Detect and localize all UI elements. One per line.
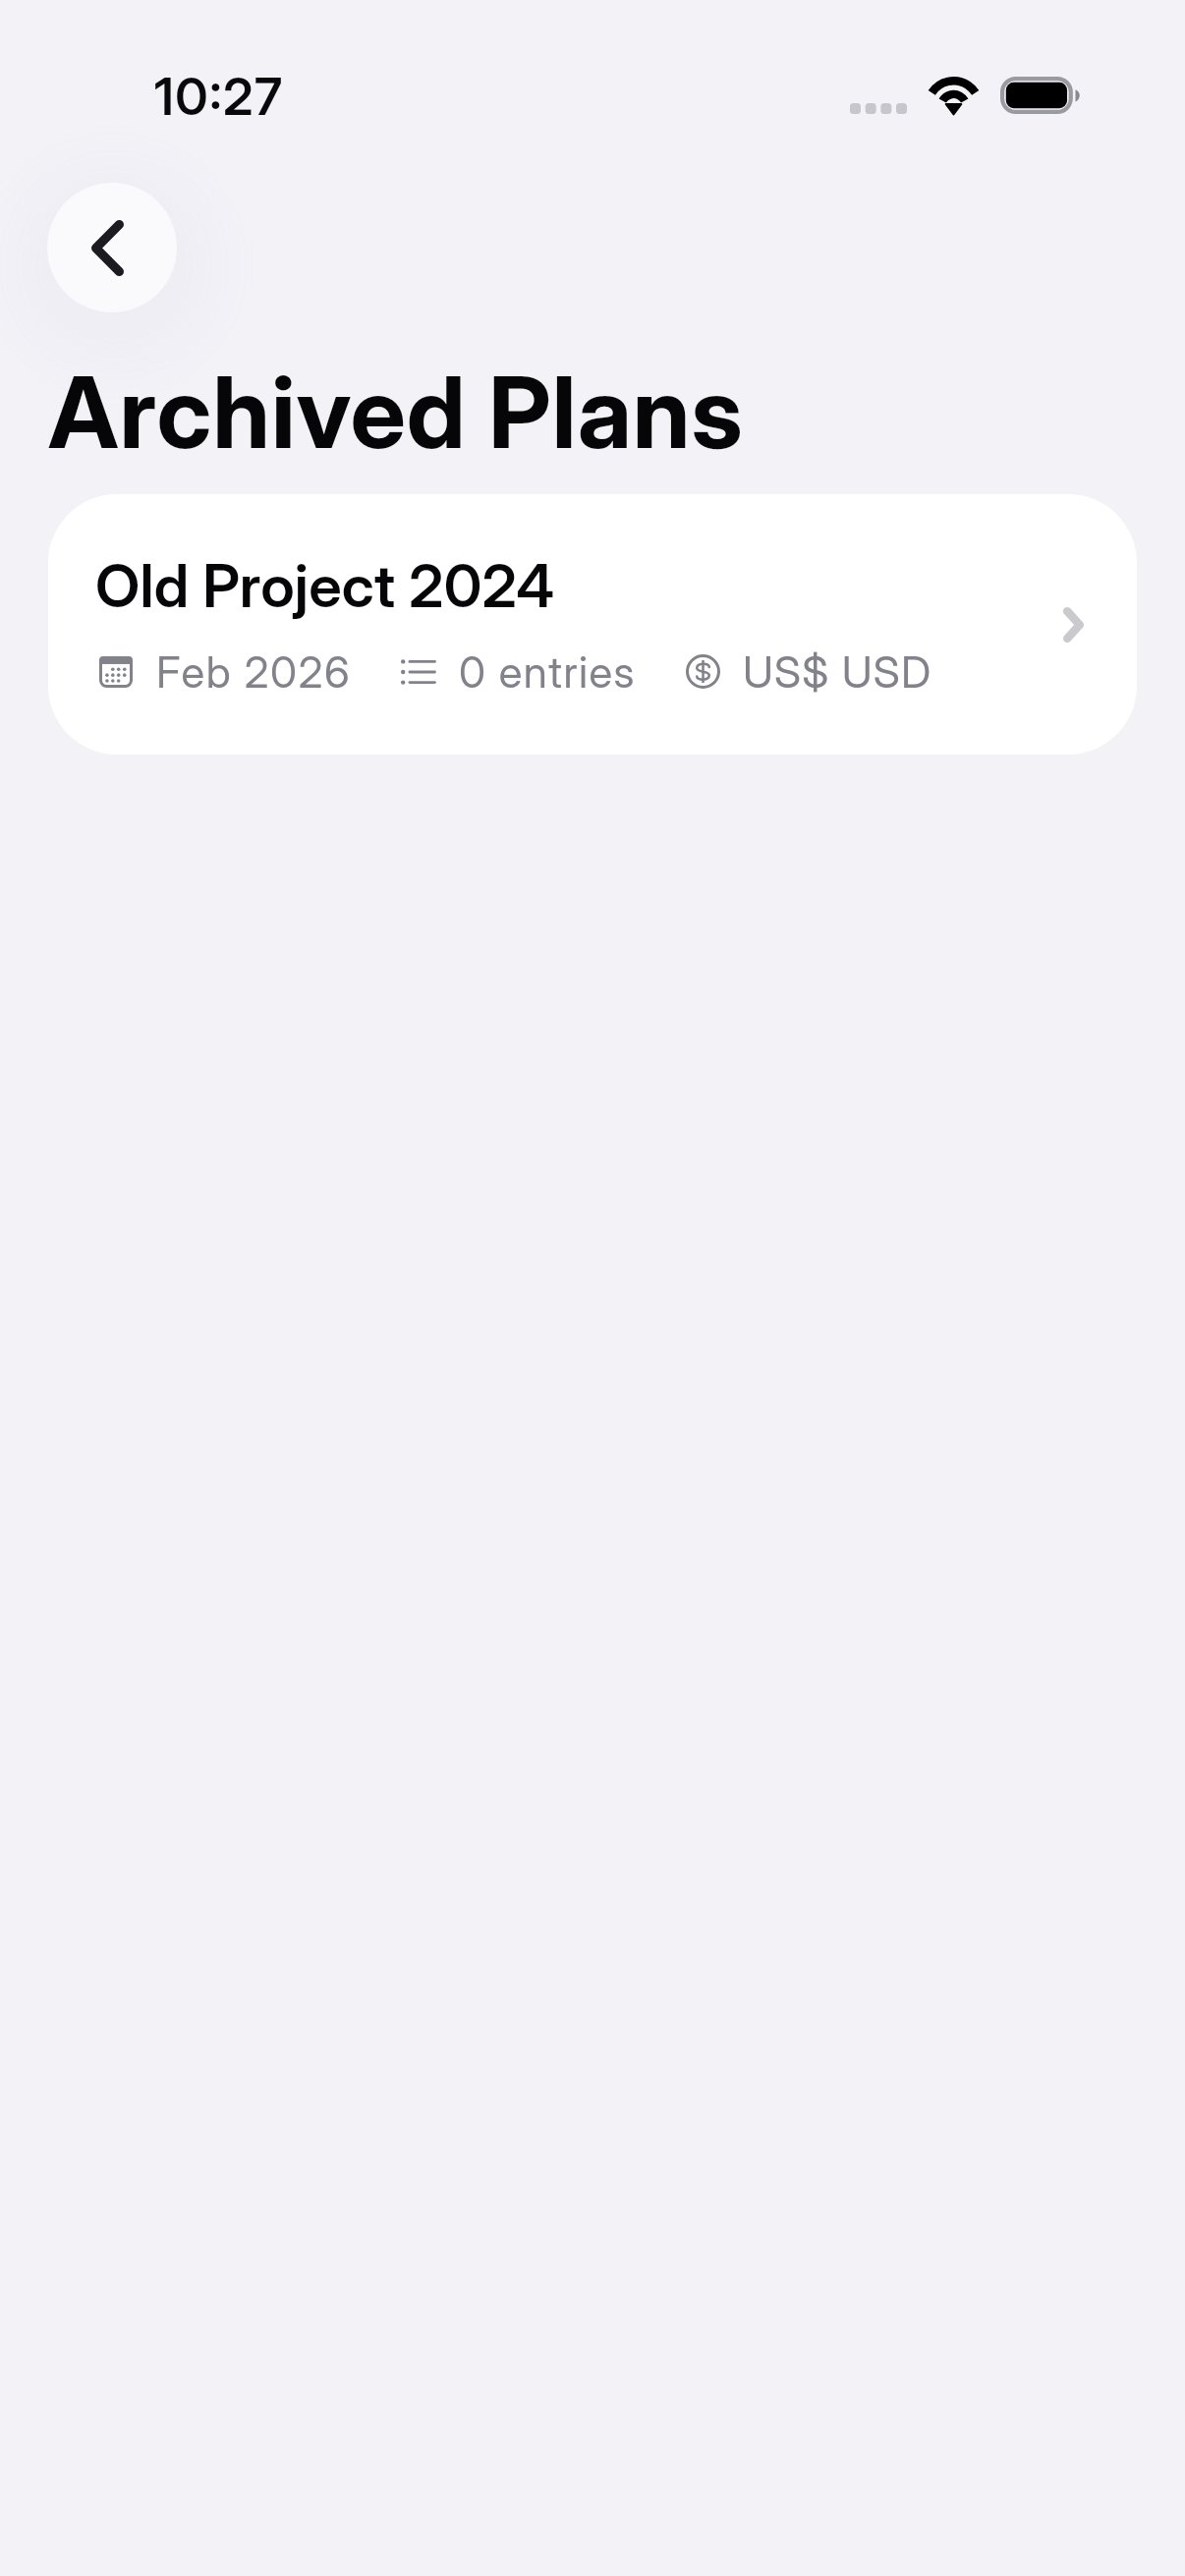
staticText: Feb 2026: [156, 645, 352, 698]
staticText: US$ USD: [743, 645, 932, 698]
staticText: 0 entries: [459, 645, 636, 698]
staticText: Old Project 2024: [95, 549, 555, 621]
staticText: 10:27: [154, 65, 284, 127]
button[interactable]: Back: [47, 183, 177, 312]
button[interactable]: Old Project 2024: [48, 494, 1137, 755]
staticText: Archived Plans: [48, 353, 744, 472]
